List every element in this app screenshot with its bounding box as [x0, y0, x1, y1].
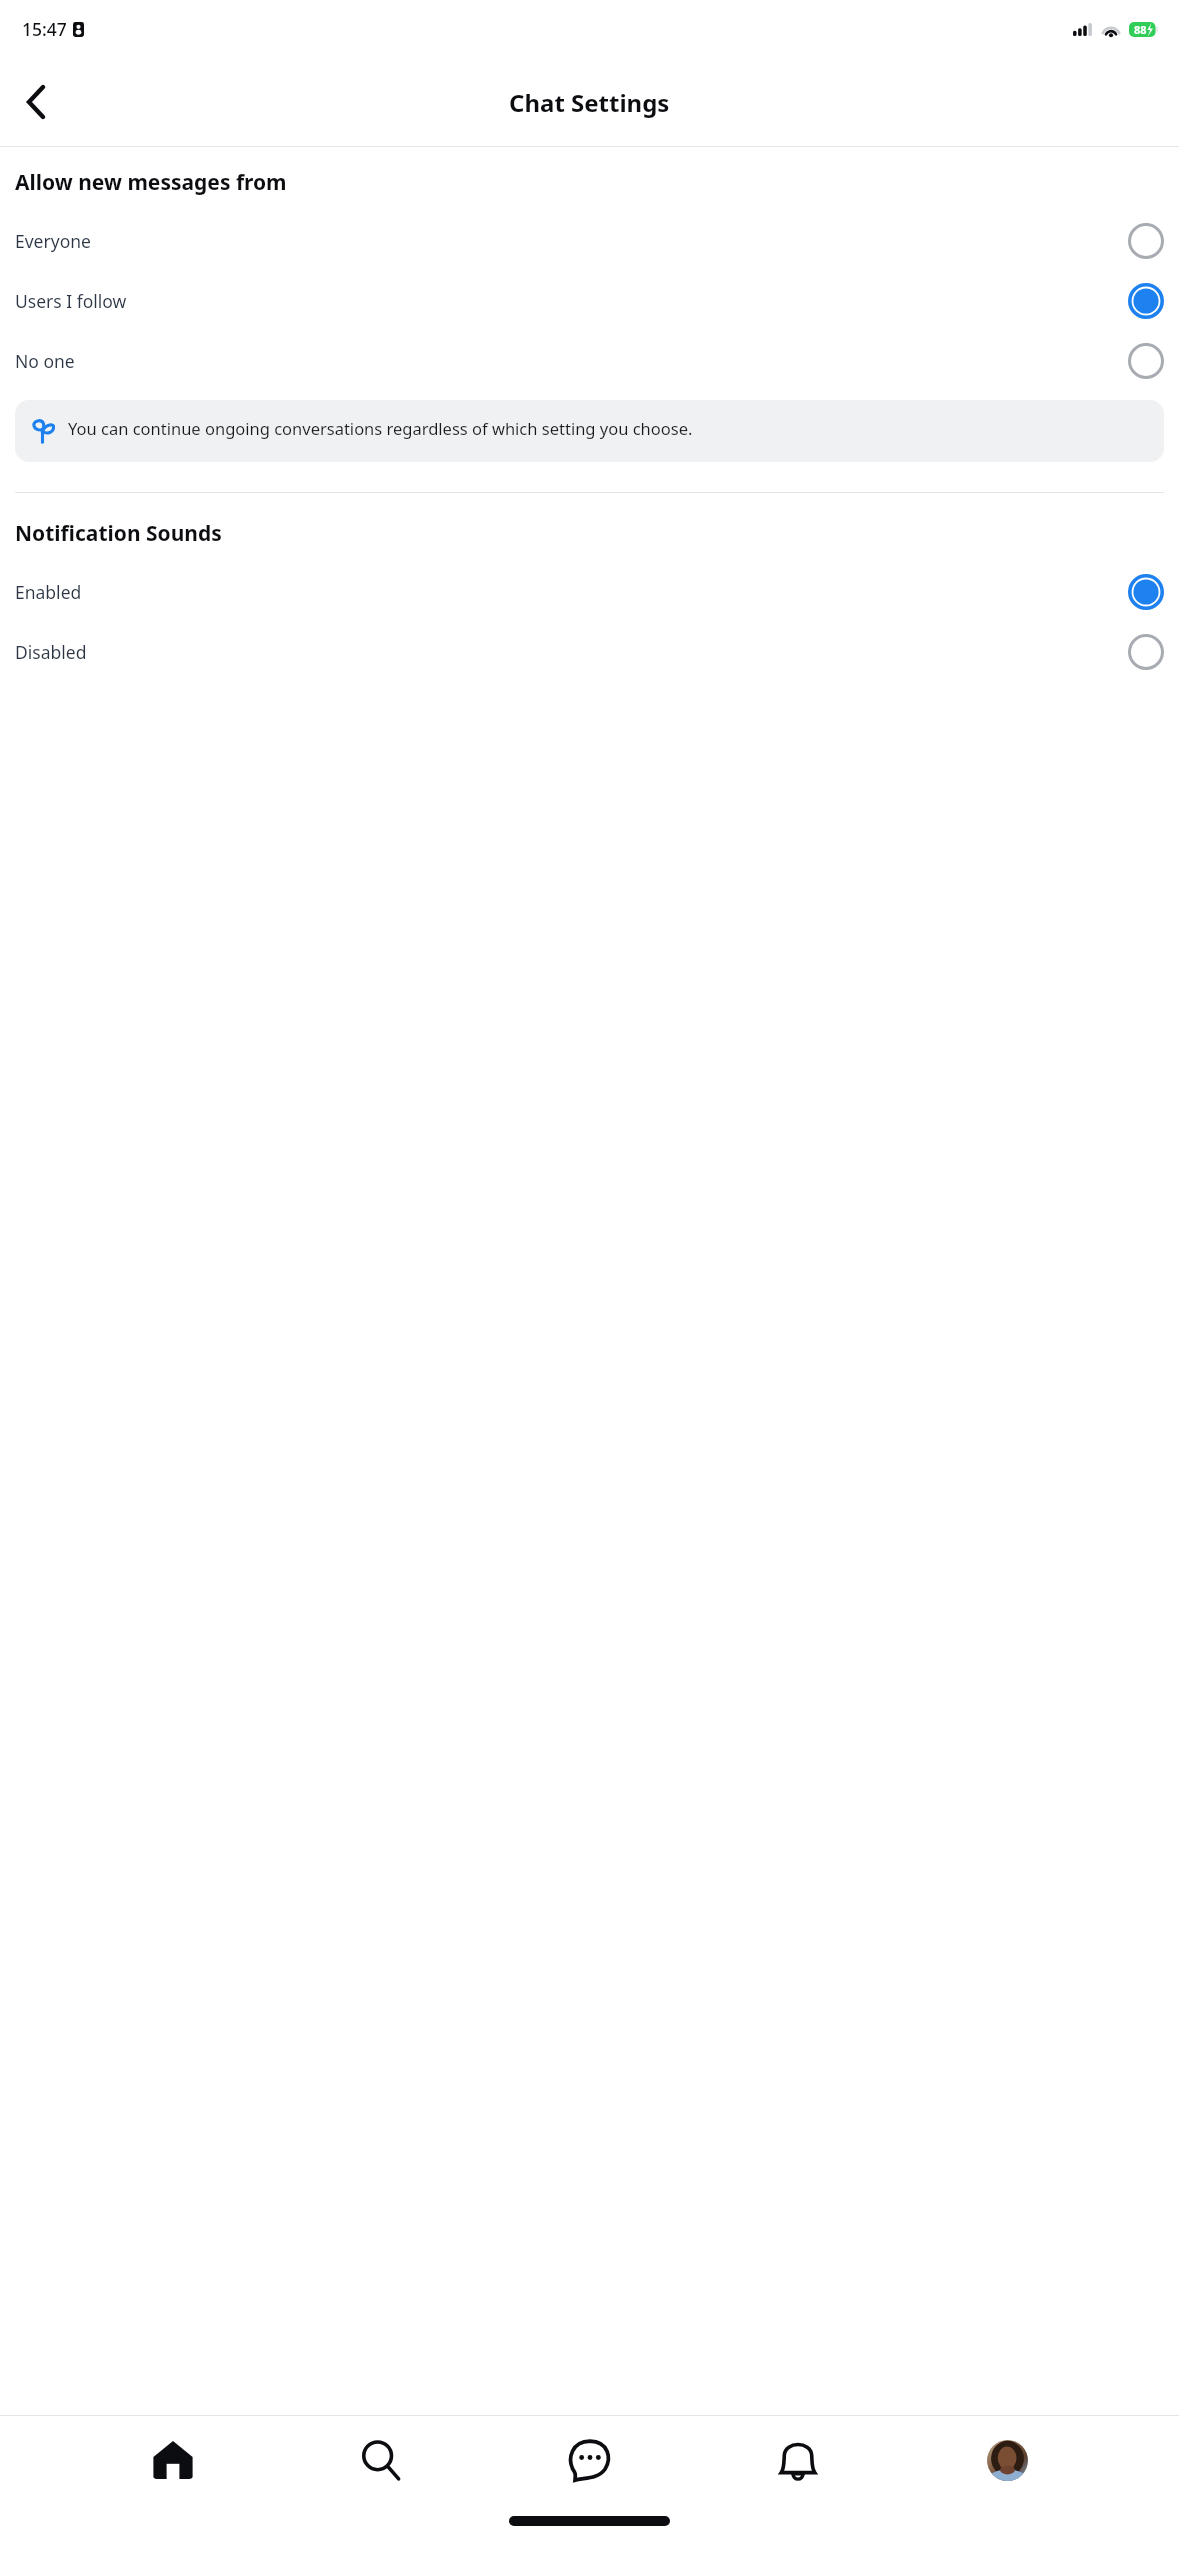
button[interactable]: Users I follow: [0, 271, 1179, 331]
button[interactable]: Home: [137, 2424, 209, 2496]
staticText: Users I follow: [15, 289, 1128, 313]
button[interactable]: Profile: [971, 2424, 1043, 2496]
staticText: 15:47: [22, 17, 67, 41]
staticText: Disabled: [15, 640, 1128, 664]
button[interactable]: Disabled: [0, 622, 1179, 682]
staticText: Chat Settings: [509, 86, 670, 119]
staticText: Allow new messages from: [15, 168, 287, 197]
staticText: 88: [1134, 22, 1147, 37]
button[interactable]: Back: [8, 74, 64, 130]
button[interactable]: You can continue ongoing conversations r…: [15, 400, 1164, 462]
staticText: Enabled: [15, 580, 1128, 604]
staticText: Everyone: [15, 229, 1128, 253]
button[interactable]: Messages: [554, 2424, 626, 2496]
button[interactable]: Search: [345, 2424, 417, 2496]
button[interactable]: Everyone: [0, 211, 1179, 271]
button[interactable]: Notifications: [762, 2424, 834, 2496]
staticText: You can continue ongoing conversations r…: [68, 417, 693, 439]
staticText: Notification Sounds: [15, 519, 222, 548]
button[interactable]: Enabled: [0, 562, 1179, 622]
button[interactable]: No one: [0, 331, 1179, 391]
staticText: No one: [15, 349, 1128, 373]
